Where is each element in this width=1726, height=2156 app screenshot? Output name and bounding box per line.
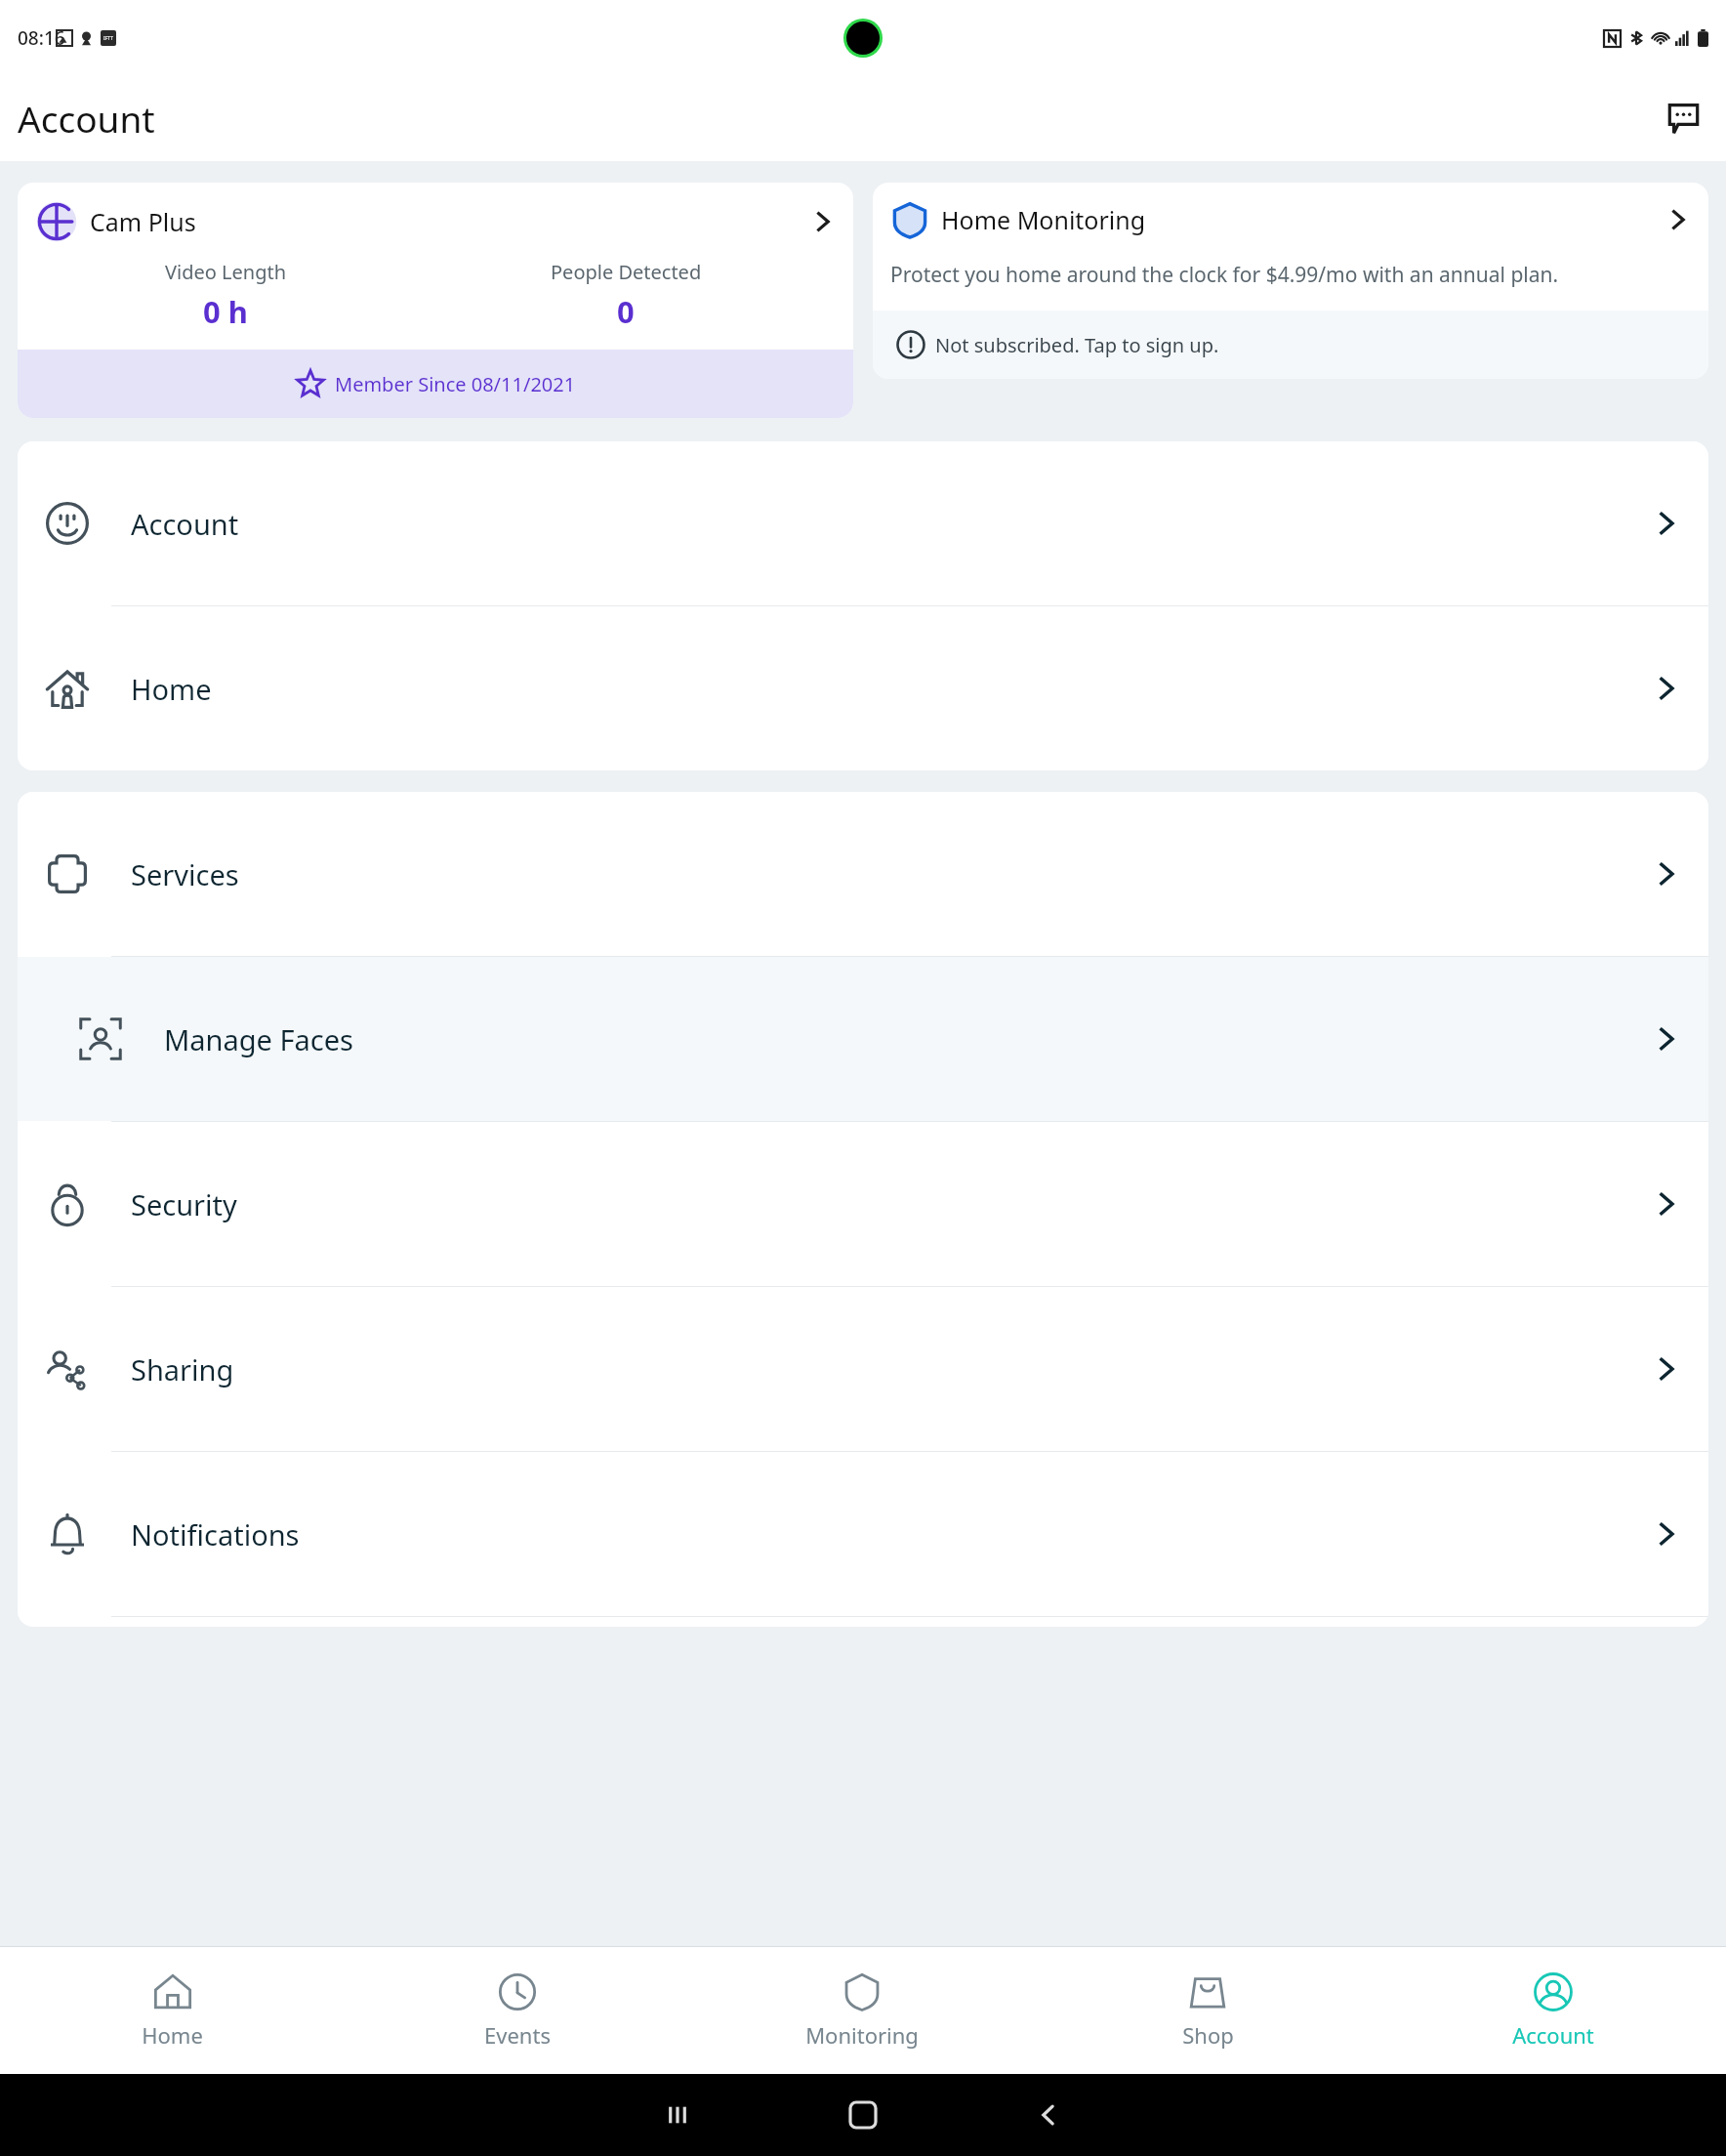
staticText: 0 h <box>203 291 248 332</box>
button[interactable]: Shop <box>1035 1947 1380 2074</box>
button[interactable]: Recents <box>648 2086 707 2144</box>
staticText: Security <box>131 1185 237 1223</box>
staticText: 08:16 <box>18 25 65 51</box>
button[interactable]: Home <box>0 1947 345 2074</box>
staticText: Monitoring <box>805 2020 919 2050</box>
staticText: Account <box>131 505 239 543</box>
button[interactable]: Account <box>1380 1947 1726 2074</box>
button[interactable]: Security <box>18 1122 1708 1286</box>
button[interactable]: Notifications <box>18 1452 1708 1616</box>
staticText: People Detected <box>551 259 702 285</box>
button[interactable]: Messages <box>1660 95 1706 142</box>
button[interactable]: Sharing <box>18 1287 1708 1451</box>
staticText: Protect you home around the clock for $4… <box>890 261 1559 289</box>
staticText: Not subscribed. Tap to sign up. <box>935 332 1219 358</box>
staticText: Cam Plus <box>90 205 196 238</box>
button[interactable]: Home <box>18 606 1708 770</box>
staticText: Account <box>1512 2020 1594 2050</box>
staticText: Home <box>131 670 212 708</box>
staticText: IFTT <box>103 35 113 42</box>
staticText: Video Length <box>165 259 287 285</box>
staticText: Manage Faces <box>164 1020 353 1058</box>
staticText: Notifications <box>131 1515 300 1554</box>
button[interactable]: Cam Plus <box>18 183 853 418</box>
button[interactable]: Back <box>1019 2086 1078 2144</box>
button[interactable]: Account <box>18 441 1708 605</box>
button[interactable]: Services <box>18 792 1708 956</box>
staticText: Services <box>131 855 239 893</box>
button[interactable]: Home <box>834 2086 892 2144</box>
button[interactable]: Manage Faces <box>18 957 1708 1121</box>
staticText: Shop <box>1182 2020 1234 2050</box>
staticText: Home <box>142 2020 203 2050</box>
staticText: Home Monitoring <box>941 203 1146 236</box>
staticText: Member Since 08/11/2021 <box>335 371 576 397</box>
button[interactable]: Home Monitoring <box>873 183 1708 379</box>
button[interactable]: Monitoring <box>689 1947 1035 2074</box>
staticText: Account <box>18 94 155 143</box>
staticText: Sharing <box>131 1350 234 1389</box>
staticText: 0 <box>617 291 635 332</box>
button[interactable]: Events <box>345 1947 689 2074</box>
staticText: Events <box>484 2020 551 2050</box>
